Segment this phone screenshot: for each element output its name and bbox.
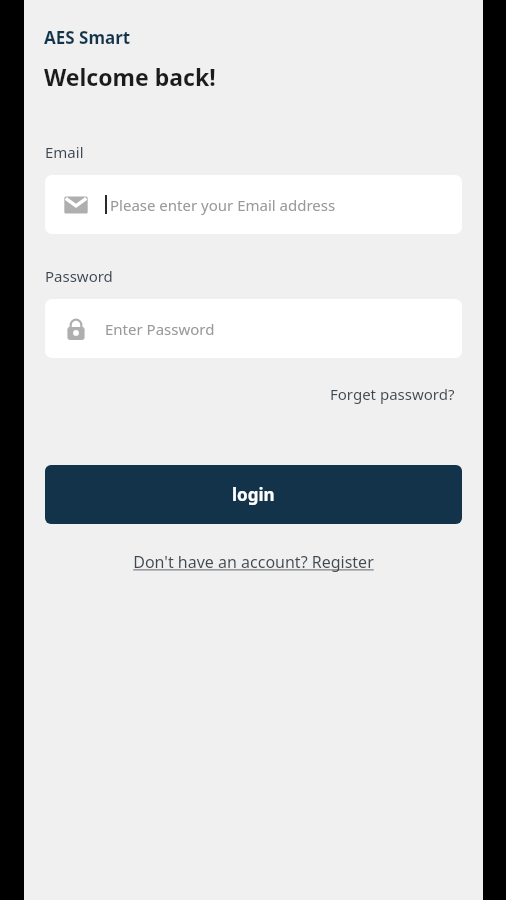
button[interactable]: Don't have an account? Register xyxy=(127,547,380,577)
staticText: Welcome back! xyxy=(44,61,216,92)
button[interactable]: login xyxy=(45,465,462,524)
staticText: AES Smart xyxy=(44,26,131,49)
staticText: login xyxy=(232,483,275,506)
staticText: Email xyxy=(45,142,84,162)
button[interactable]: Password xyxy=(45,299,462,358)
staticText: Enter Password xyxy=(105,319,215,339)
staticText: Don't have an account? Register xyxy=(133,551,374,573)
button[interactable]: Forget password? xyxy=(326,380,459,408)
staticText: Please enter your Email address xyxy=(110,195,336,215)
staticText: Password xyxy=(45,266,113,286)
staticText: Forget password? xyxy=(330,384,455,404)
button[interactable]: Email xyxy=(45,175,462,234)
